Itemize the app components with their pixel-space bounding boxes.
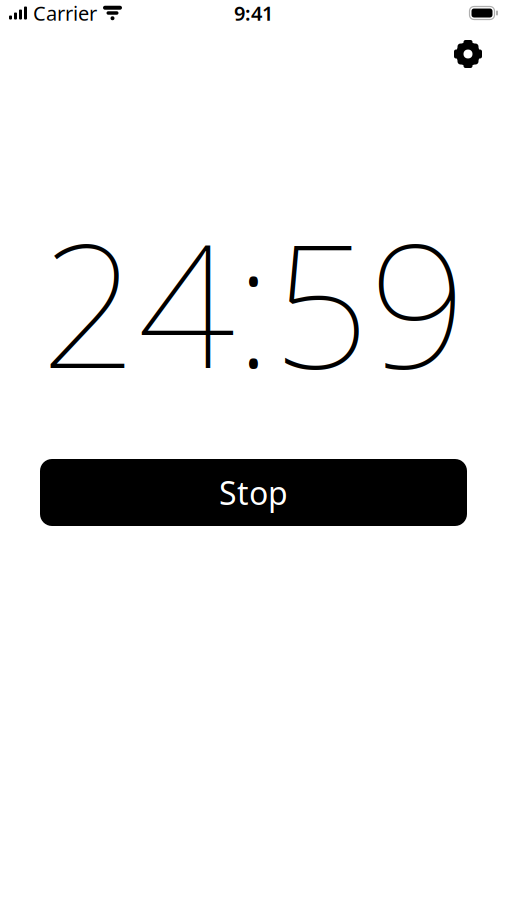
staticText: 9:41 [234, 0, 273, 26]
button[interactable]: Stop [40, 459, 467, 526]
staticText: Carrier [33, 0, 97, 26]
button[interactable]: Settings [446, 32, 490, 76]
staticText: 24:59 [40, 188, 466, 415]
staticText: Stop [219, 471, 288, 514]
